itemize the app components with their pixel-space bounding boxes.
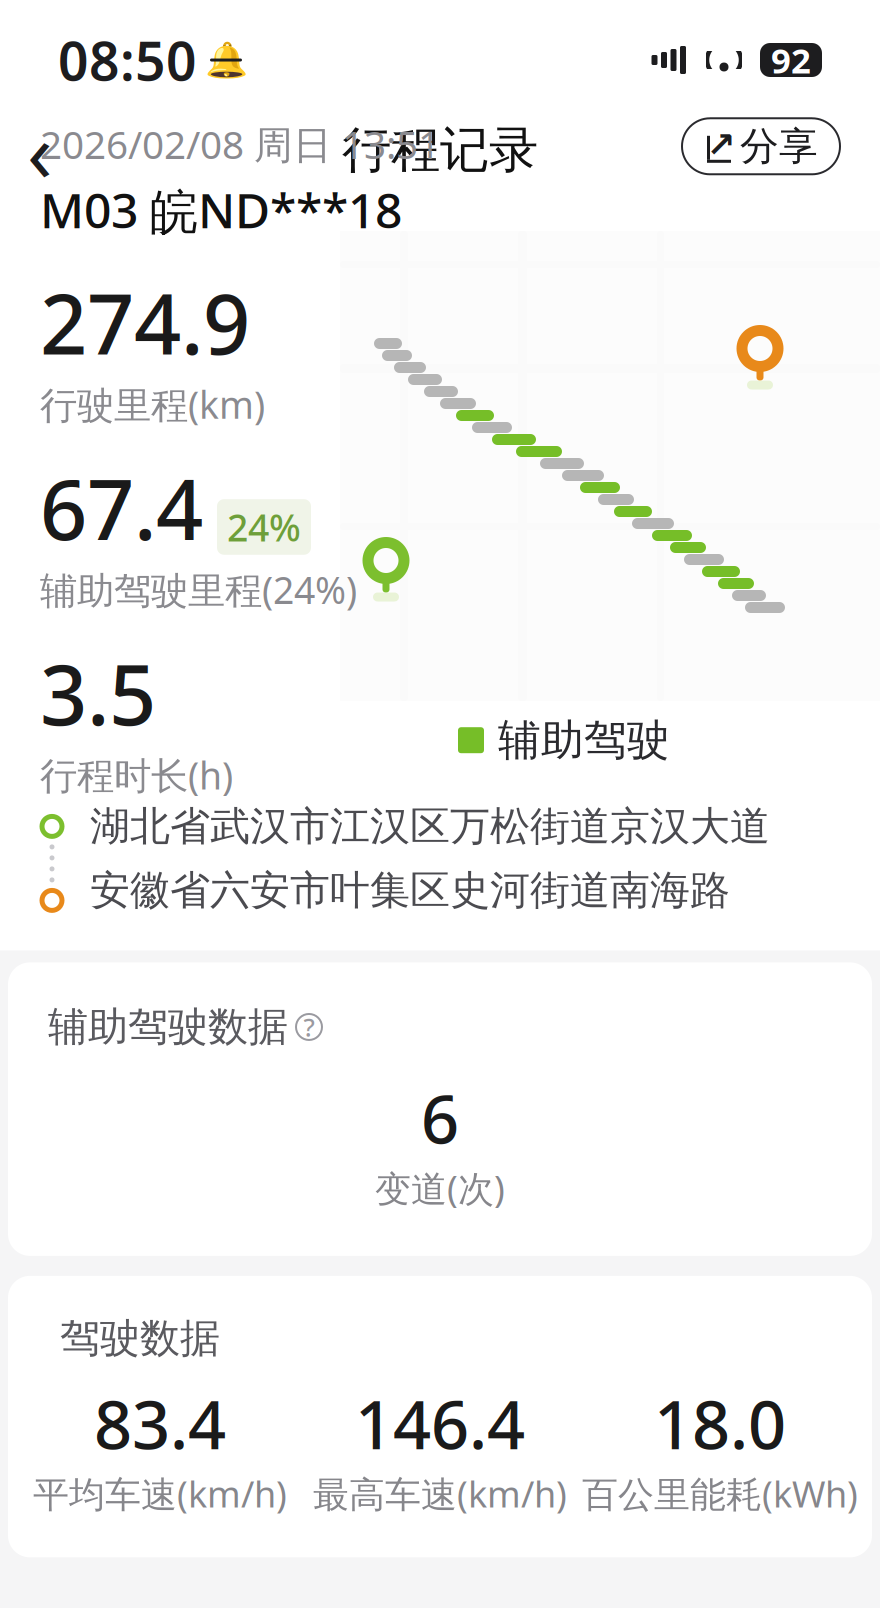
staticText: 92: [771, 37, 811, 83]
staticText: 湖北省武汉市江汉区万松街道京汉大道: [90, 802, 770, 851]
staticText: ‹: [27, 95, 53, 205]
staticText: 平均车速(km/h): [33, 1469, 287, 1517]
staticText: 辅助驾驶: [498, 714, 670, 766]
staticText: 24%: [227, 502, 301, 552]
button[interactable]: ↗: [682, 118, 840, 174]
staticText: 分享: [740, 123, 818, 170]
staticText: 2026/02/08 周日 13:51: [40, 118, 440, 170]
staticText: ↗: [706, 125, 735, 164]
staticText: 辅助驾驶数据: [48, 1002, 288, 1051]
staticText: 行程时长(h): [40, 750, 233, 800]
staticText: M03 皖ND***18: [40, 178, 402, 242]
button[interactable]: Back: [8, 118, 72, 182]
staticText: 最高车速(km/h): [313, 1469, 567, 1517]
staticText: 辅助驾驶里程(24%): [40, 565, 357, 614]
staticText: 🔔: [204, 40, 247, 80]
staticText: 百公里能耗(kWh): [582, 1469, 858, 1517]
staticText: 行程记录: [342, 120, 538, 180]
button[interactable]: 辅助驾驶数据: [48, 1002, 322, 1051]
staticText: 67.4: [40, 453, 203, 563]
staticText: 08:50: [58, 25, 197, 95]
staticText: 18.0: [654, 1379, 786, 1467]
staticText: 行驶里程(km): [40, 379, 265, 429]
staticText: 274.9: [40, 268, 250, 377]
staticText: 驾驶数据: [60, 1314, 220, 1363]
staticText: 83.4: [94, 1379, 226, 1467]
staticText: 变道(次): [375, 1164, 505, 1212]
staticText: 3.5: [40, 638, 156, 748]
staticText: 6: [421, 1073, 459, 1162]
staticText: 安徽省六安市叶集区史河街道南海路: [90, 866, 730, 915]
staticText: 146.4: [355, 1379, 525, 1467]
staticText: ?: [303, 1010, 314, 1044]
